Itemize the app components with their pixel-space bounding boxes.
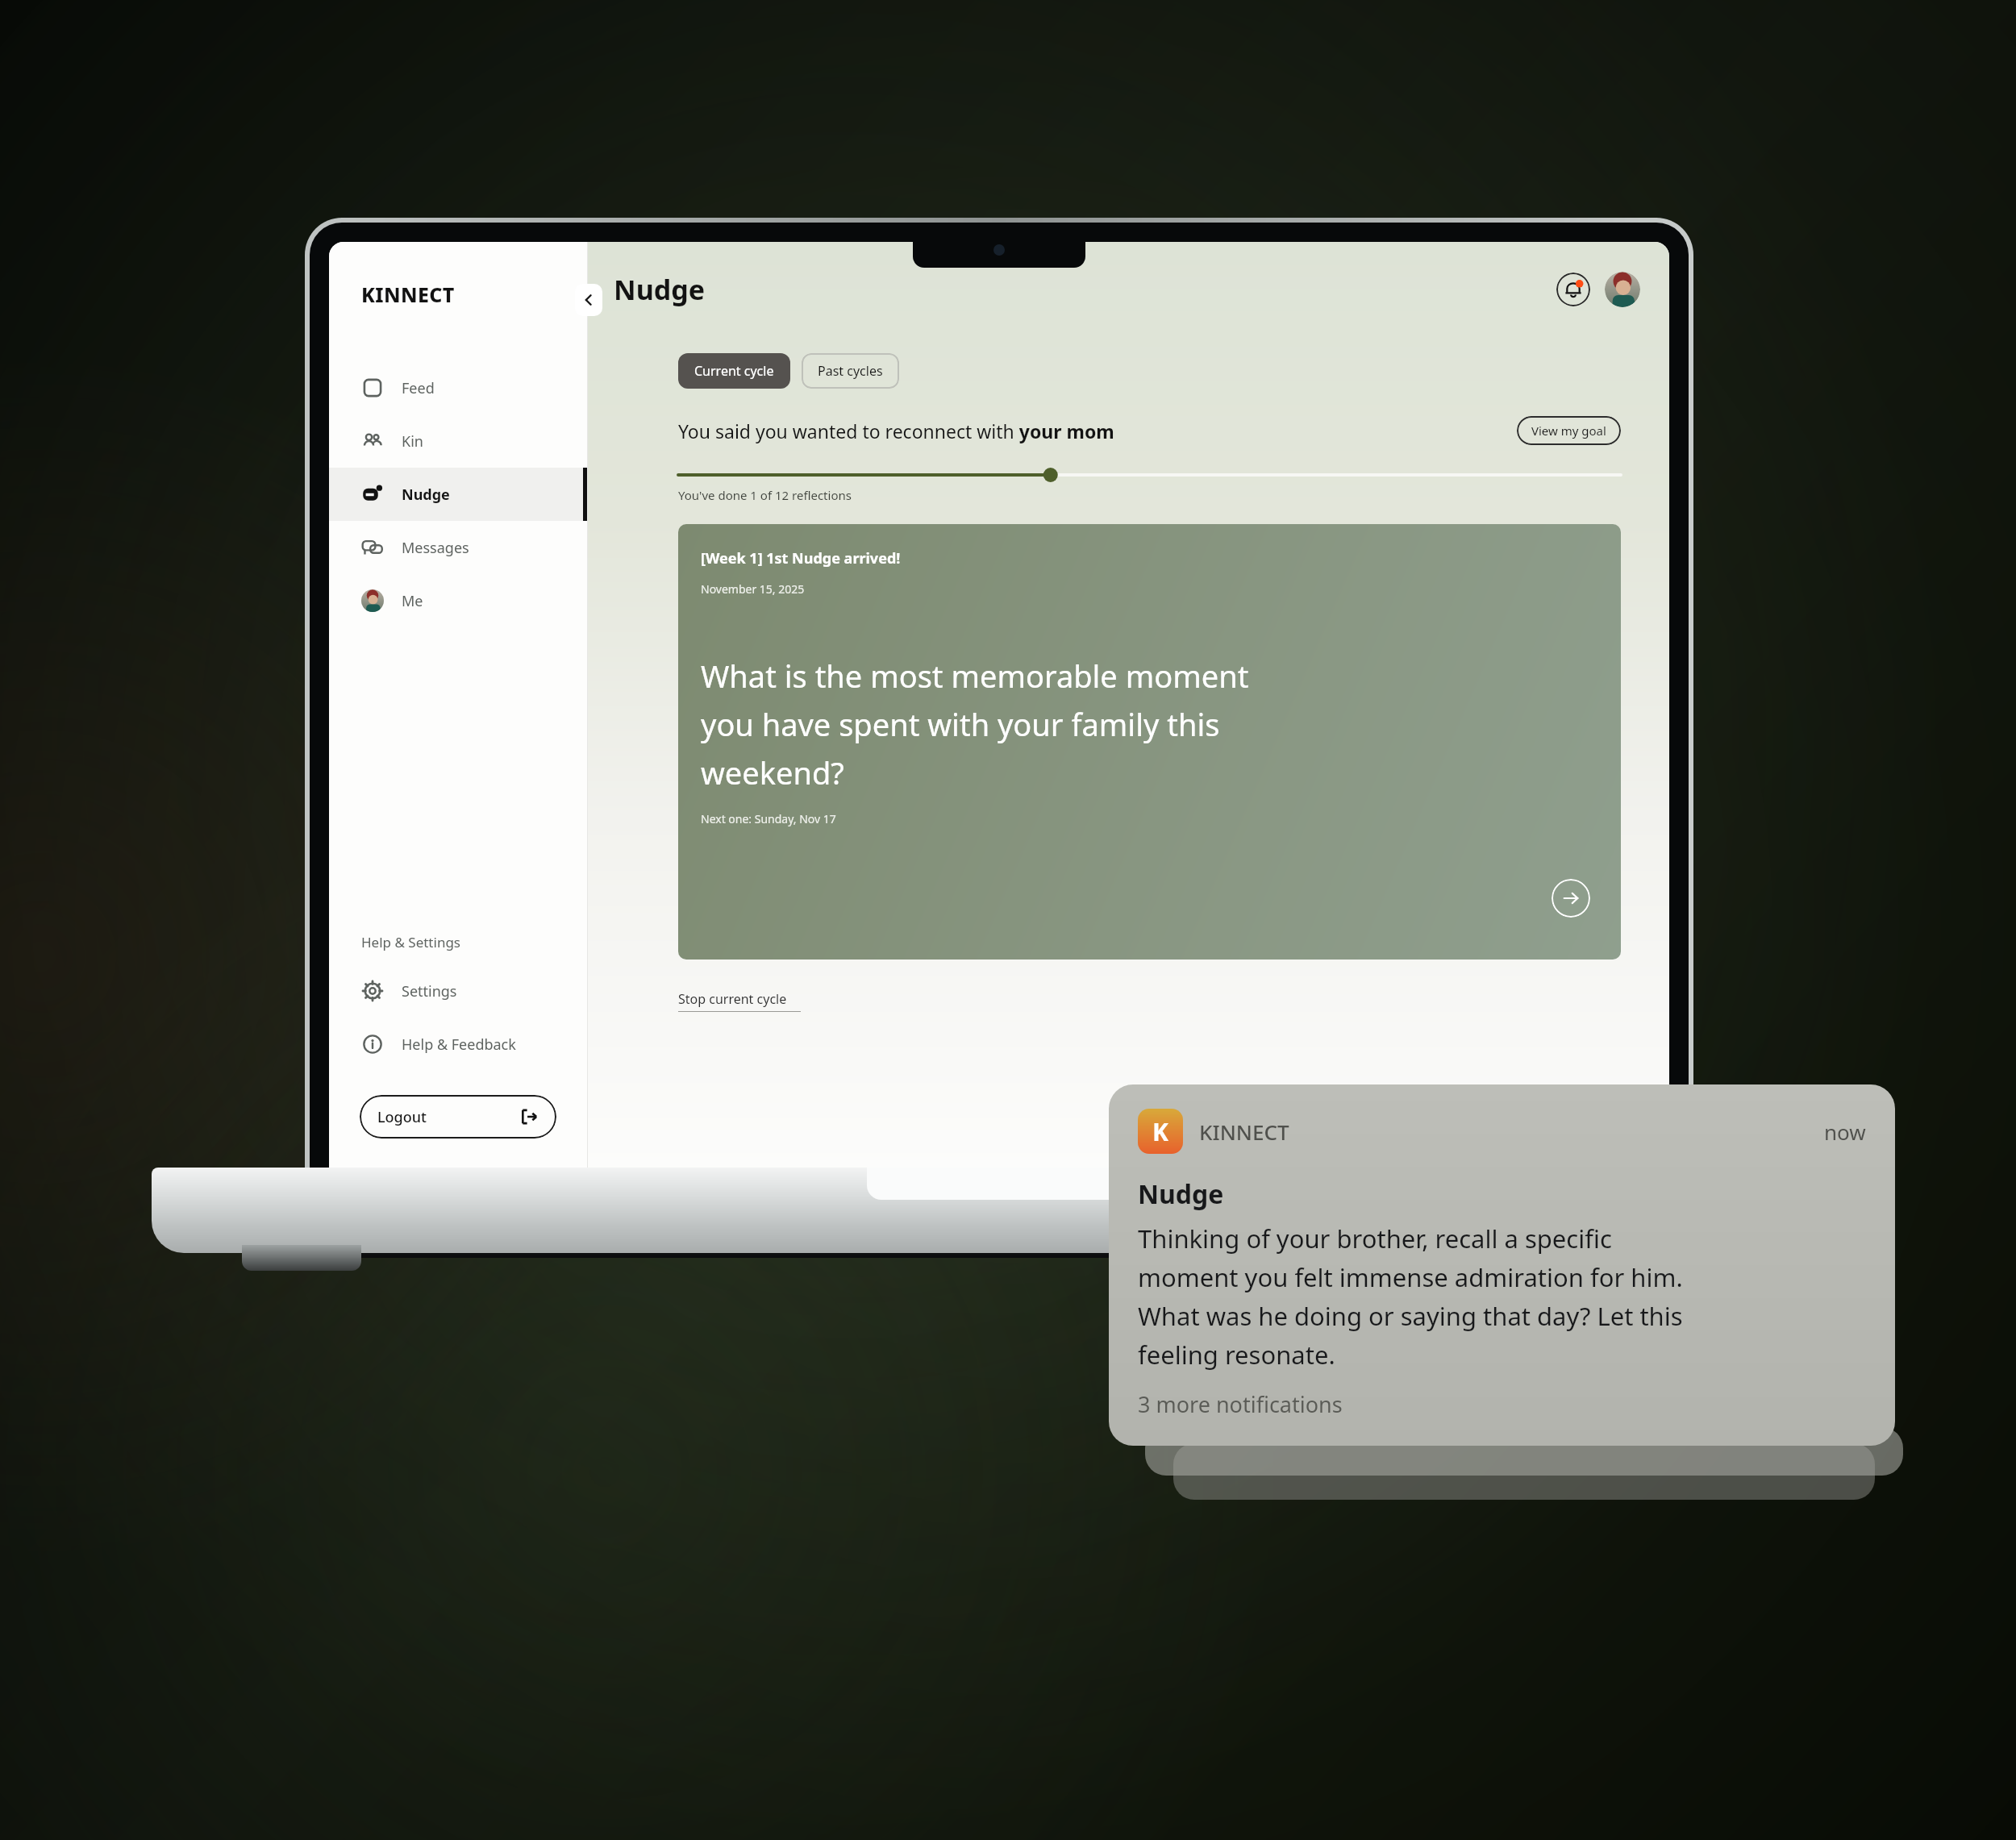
button[interactable]: Notifications: [1556, 273, 1590, 306]
staticText: Feed: [402, 378, 435, 398]
button[interactable]: Feed: [329, 361, 587, 414]
staticText: Nudge: [614, 271, 706, 308]
staticText: KINNECT: [361, 281, 455, 308]
button[interactable]: Logout: [360, 1095, 556, 1139]
staticText: Kin: [402, 431, 423, 452]
button[interactable]: Back: [575, 284, 602, 316]
staticText: Current cycle: [694, 362, 774, 380]
staticText: Logout: [377, 1107, 427, 1127]
staticText: Help & Feedback: [402, 1034, 516, 1055]
staticText: Messages: [402, 538, 469, 558]
staticText: Nudge: [402, 485, 450, 505]
staticText: Me: [402, 591, 423, 611]
staticText: You've done 1 of 12 reflections: [678, 487, 852, 503]
staticText: Thinking of your brother, recall a speci…: [1138, 1222, 1683, 1372]
staticText: KINNECT: [1199, 1118, 1289, 1146]
button[interactable]: Messages: [329, 521, 587, 574]
staticText: You said you wanted to reconnect with yo…: [678, 418, 1114, 443]
staticText: View my goal: [1531, 423, 1606, 439]
button[interactable]: Profile: [1605, 272, 1640, 307]
button[interactable]: Nudge: [329, 468, 587, 521]
button[interactable]: Past cycles: [802, 353, 899, 389]
staticText: Help & Settings: [361, 933, 460, 951]
button[interactable]: Stop current cycle: [678, 990, 801, 1012]
staticText: K: [1152, 1115, 1168, 1148]
staticText: November 15, 2025: [701, 581, 805, 597]
button[interactable]: Settings: [329, 964, 587, 1018]
button[interactable]: [Week 1] 1st Nudge arrived!: [678, 524, 1621, 960]
button[interactable]: K: [1109, 1084, 1895, 1446]
button[interactable]: Help & Feedback: [329, 1018, 587, 1071]
staticText: Past cycles: [818, 362, 883, 380]
staticText: Nudge: [1138, 1176, 1224, 1212]
staticText: 3 more notifications: [1138, 1389, 1343, 1419]
staticText: now: [1824, 1118, 1866, 1146]
button[interactable]: View my goal: [1517, 416, 1621, 445]
button[interactable]: Me: [329, 574, 587, 627]
button[interactable]: Current cycle: [678, 353, 790, 389]
staticText: [Week 1] 1st Nudge arrived!: [701, 548, 901, 568]
staticText: Stop current cycle: [678, 990, 787, 1008]
button[interactable]: Open nudge: [1552, 879, 1590, 918]
staticText: Settings: [402, 981, 457, 1001]
staticText: Next one: Sunday, Nov 17: [701, 811, 836, 826]
button[interactable]: Kin: [329, 414, 587, 468]
staticText: What is the most memorable moment you ha…: [701, 655, 1249, 793]
